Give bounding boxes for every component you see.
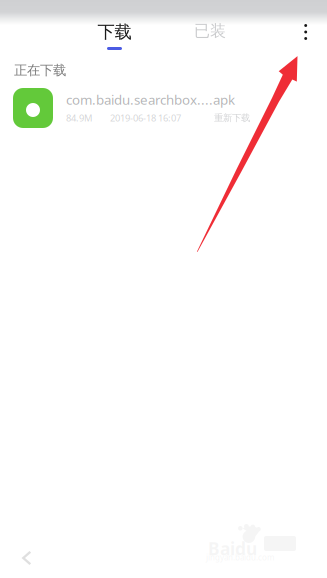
- staticText: 84.9M: [66, 112, 92, 124]
- staticText: 正在下载: [14, 62, 66, 78]
- staticText: 下载: [97, 21, 131, 43]
- staticText: com.baidu.searchbox....apk: [66, 91, 235, 108]
- button[interactable]: Back: [8, 541, 42, 575]
- staticText: Baidu: [208, 537, 257, 560]
- button[interactable]: More options: [286, 12, 326, 52]
- staticText: jingyan.baidu.com: [206, 552, 274, 563]
- staticText: 2019-06-18 16:07: [110, 112, 181, 124]
- button[interactable]: com.baidu.searchbox....apk: [13, 82, 326, 134]
- button[interactable]: 下载: [74, 11, 154, 55]
- staticText: 重新下载: [214, 112, 250, 124]
- button[interactable]: 已装: [170, 10, 250, 54]
- staticText: 已装: [194, 21, 226, 41]
